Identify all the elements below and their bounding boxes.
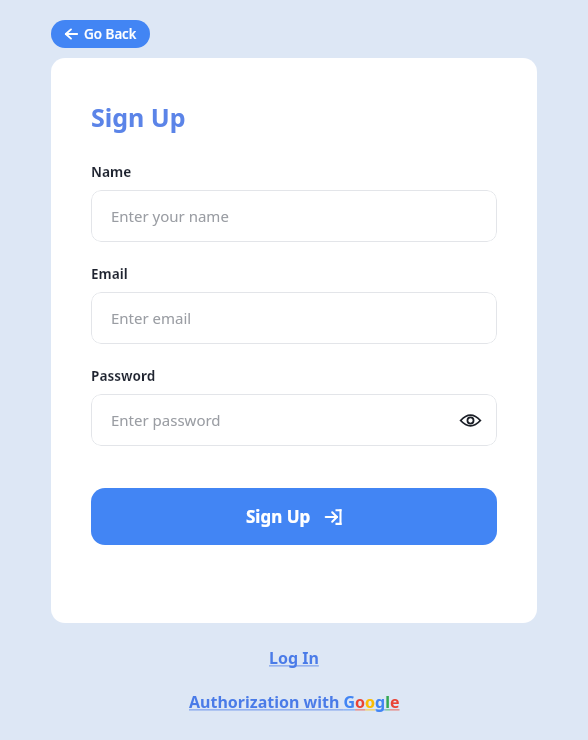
staticText: Sign Up <box>246 505 311 528</box>
staticText: Password <box>91 367 156 385</box>
button[interactable]: Sign Up <box>91 488 497 545</box>
staticText: Sign Up <box>91 100 186 134</box>
staticText: Go Back <box>84 25 137 43</box>
button[interactable]: Show password <box>457 407 483 433</box>
staticText: Email <box>91 265 128 283</box>
other: Sign up <box>325 508 343 526</box>
other: Back <box>64 27 78 41</box>
staticText: Enter your name <box>111 206 229 226</box>
button[interactable]: Enter your name <box>91 190 497 242</box>
button[interactable]: Authorization with Google <box>181 689 408 715</box>
button[interactable]: Enter password <box>91 394 497 446</box>
button[interactable]: Enter email <box>91 292 497 344</box>
staticText: Enter password <box>111 410 221 430</box>
button[interactable]: Back <box>51 20 150 48</box>
staticText: Enter email <box>111 308 192 328</box>
staticText: Name <box>91 163 132 181</box>
staticText: Log In <box>269 647 319 669</box>
staticText: Authorization with Google <box>189 691 400 713</box>
button[interactable]: Log In <box>261 645 327 671</box>
